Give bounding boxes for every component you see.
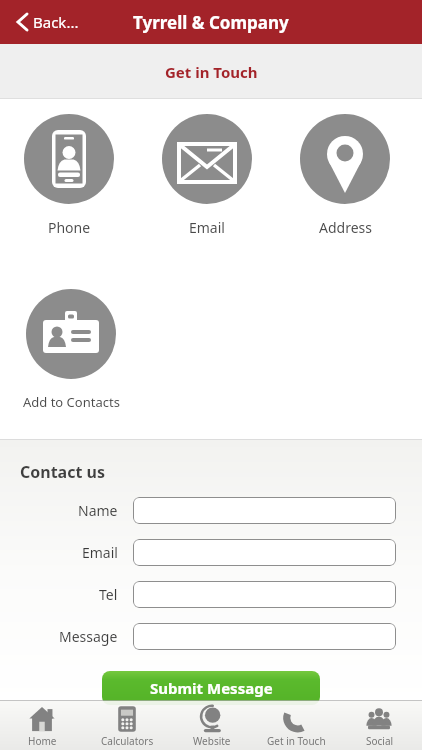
button[interactable]: Phone <box>24 114 114 237</box>
button[interactable] <box>133 581 396 608</box>
staticText: Get in Touch <box>267 734 326 748</box>
staticText: Contact us <box>20 461 105 483</box>
button[interactable] <box>133 539 396 566</box>
button[interactable]: Calculators <box>85 701 170 750</box>
staticText: Name <box>78 501 118 520</box>
button[interactable]: Address <box>300 114 390 237</box>
staticText: Submit Message <box>150 678 273 698</box>
button[interactable]: Social <box>338 701 422 750</box>
button[interactable] <box>133 497 396 524</box>
button[interactable]: Email <box>162 114 252 237</box>
button[interactable]: Get in Touch <box>254 701 338 750</box>
staticText: Social <box>366 734 394 748</box>
button[interactable] <box>133 623 396 650</box>
staticText: Back... <box>33 12 79 32</box>
button[interactable]: Back... <box>16 12 79 32</box>
staticText: Email <box>189 218 225 237</box>
staticText: Add to Contacts <box>23 393 120 411</box>
button[interactable]: Submit Message <box>102 671 320 705</box>
staticText: Website <box>193 734 231 748</box>
staticText: Get in Touch <box>165 62 258 82</box>
staticText: Address <box>319 218 372 237</box>
staticText: Phone <box>48 218 91 237</box>
staticText: Tyrrell & Company <box>133 11 289 34</box>
button[interactable]: Website <box>170 701 254 750</box>
staticText: Tel <box>99 585 118 604</box>
button[interactable]: Add to Contacts <box>0 289 142 411</box>
staticText: Email <box>82 543 118 562</box>
staticText: Message <box>59 627 118 646</box>
button[interactable]: Home <box>0 701 85 750</box>
staticText: Home <box>28 734 57 748</box>
staticText: Calculators <box>101 734 154 748</box>
